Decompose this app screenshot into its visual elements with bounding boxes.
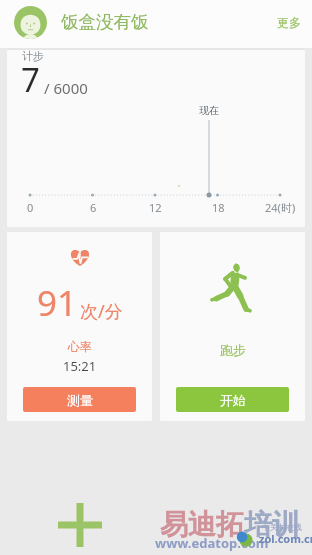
staticText: 0 — [27, 200, 34, 215]
staticText: 24(时) — [265, 200, 296, 215]
button[interactable]: 计步 — [7, 48, 305, 227]
button[interactable]: 测量 — [23, 387, 136, 412]
staticText: 中关村在线 — [262, 522, 302, 532]
staticText: / 6000 — [44, 78, 88, 98]
staticText: 15:21 — [63, 357, 97, 375]
staticText: 18 — [212, 200, 225, 215]
button[interactable]: 跑步 — [160, 232, 305, 421]
button[interactable]: 更多 — [266, 9, 312, 40]
staticText: 12 — [149, 200, 162, 215]
staticText: zol.com.cn — [259, 531, 312, 546]
staticText: 更多 — [277, 15, 301, 30]
staticText: 易迪拓 — [160, 507, 244, 542]
staticText: 饭盒没有饭 — [61, 11, 149, 33]
staticText: 培训 — [244, 507, 300, 542]
staticText: 计步 — [22, 49, 44, 63]
staticText: 跑步 — [220, 342, 246, 358]
staticText: 次/分 — [80, 299, 123, 324]
staticText: 现在 — [199, 104, 219, 117]
button[interactable]: 91 — [7, 232, 152, 421]
staticText: 91 — [37, 279, 78, 327]
staticText: 6 — [90, 200, 97, 215]
staticText: 7 — [21, 57, 40, 102]
button[interactable]: Add — [56, 501, 104, 549]
staticText: www.edatop.com — [155, 534, 269, 552]
button[interactable]: 开始 — [176, 387, 289, 412]
staticText: 心率 — [68, 339, 92, 354]
button[interactable]: Profile — [14, 6, 47, 39]
staticText: 开始 — [220, 392, 246, 408]
staticText: 测量 — [67, 392, 93, 408]
